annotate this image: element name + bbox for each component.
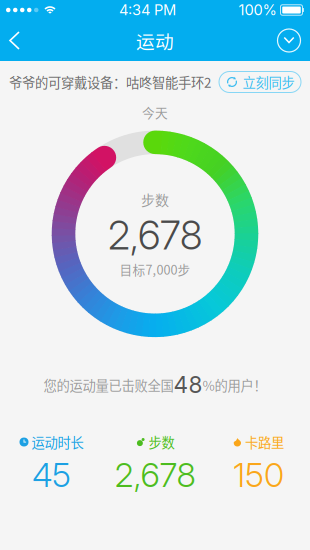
staticText: 今天 bbox=[142, 103, 168, 121]
staticText: 150 bbox=[233, 455, 284, 495]
staticText: 您的运动量已击败全国 bbox=[43, 375, 173, 394]
staticText: 4:34 PM bbox=[119, 1, 176, 19]
staticText: 步数 bbox=[141, 189, 169, 209]
staticText: 运动时长 bbox=[31, 432, 83, 452]
staticText: 48 bbox=[173, 371, 202, 398]
staticText: 爷爷的可穿戴设备：咕咚智能手环2 bbox=[9, 72, 211, 92]
staticText: 45 bbox=[32, 455, 71, 495]
staticText: 步数 bbox=[148, 432, 174, 452]
staticText: 2,678 bbox=[114, 455, 195, 495]
button[interactable]: More bbox=[268, 20, 310, 60]
staticText: 运动 bbox=[136, 27, 174, 54]
staticText: 目标7,000步 bbox=[119, 260, 190, 278]
staticText: 2,678 bbox=[108, 211, 202, 259]
staticText: %的用户！ bbox=[202, 375, 266, 394]
button[interactable]: Back bbox=[0, 21, 29, 60]
staticText: 立刻同步 bbox=[242, 72, 294, 92]
button[interactable]: 立刻同步 bbox=[219, 71, 301, 92]
staticText: 100% bbox=[238, 1, 276, 19]
staticText: 卡路里 bbox=[245, 432, 284, 452]
